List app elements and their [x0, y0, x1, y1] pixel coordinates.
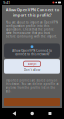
staticText: Allow OpenVPN Connect to connect to this… [12, 49, 52, 56]
button[interactable]: Home [28, 110, 36, 117]
button[interactable]: Back [11, 109, 18, 118]
button[interactable]: Recents [46, 110, 53, 117]
staticText: You are about to import an OpenVPN confi… [6, 21, 58, 38]
staticText: 9:41 [3, 0, 10, 5]
button[interactable]: Allow OpenVPN Connect to connect to this… [4, 43, 60, 58]
staticText: Don't allow [24, 68, 40, 72]
staticText: Imported profiles are stored only on thi… [5, 79, 58, 93]
staticText: Allow OpenVPN Connect to import this pro… [5, 7, 58, 18]
button[interactable]: Don't allow [24, 68, 40, 72]
button[interactable]: Accept [23, 61, 40, 67]
staticText: Accept [27, 62, 36, 66]
